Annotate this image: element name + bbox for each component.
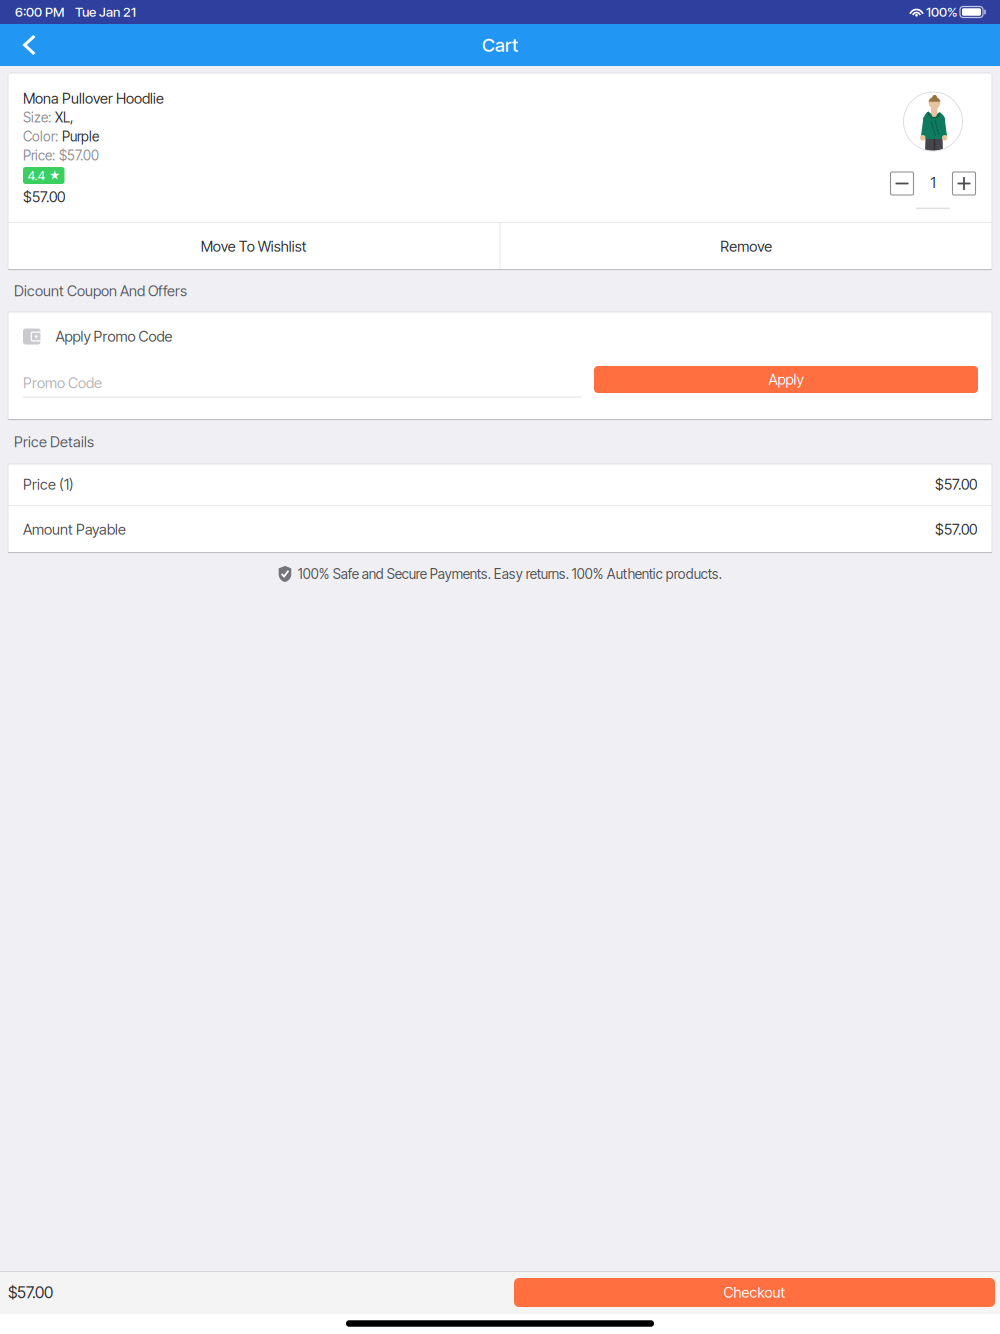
staticText: $57.00 [935,476,977,493]
staticText: Price: [23,147,55,164]
staticText: Amount Payable [23,521,126,538]
staticText: 4.4 [27,168,45,183]
staticText: Move To Wishlist [201,238,307,255]
button[interactable]: Decrease quantity [890,172,913,195]
button[interactable]: Back [0,24,59,66]
staticText: 6:00 PM [15,4,64,20]
staticText: $57.00 [8,1283,53,1302]
staticText: Apply [768,371,803,388]
staticText: $57.00 [935,521,977,538]
staticText: Apply Promo Code [55,328,172,345]
button[interactable]: Checkout [514,1278,995,1307]
staticText: ★ [49,169,60,182]
staticText: Cart [482,34,518,56]
staticText: Color: [23,128,58,145]
button[interactable]: Increase quantity [952,172,975,195]
staticText: $57.00 [59,147,99,164]
staticText: 100% Safe and Secure Payments. Easy retu… [298,566,722,582]
button[interactable]: Apply [594,366,978,393]
button[interactable]: Remove [500,223,992,270]
staticText: Mona Pullover Hoodlie [23,90,164,107]
staticText: Price Details [14,433,94,451]
staticText: 1 [930,174,935,192]
staticText: XL, [55,109,73,126]
staticText: Tue Jan 21 [75,4,136,20]
staticText: Dicount Coupon And Offers [14,282,187,300]
button[interactable]: Move To Wishlist [8,223,499,270]
staticText: Purple [62,128,99,145]
staticText: Promo Code [23,374,102,392]
staticText: Size: [23,109,51,126]
staticText: $57.00 [23,188,65,206]
staticText: Remove [720,238,772,255]
staticText: Checkout [723,1284,785,1301]
staticText: Price (1) [23,476,74,493]
staticText: 100% [926,4,957,20]
